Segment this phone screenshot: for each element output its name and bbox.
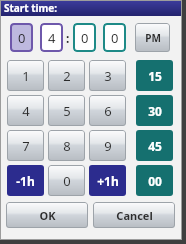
button[interactable]: 00 bbox=[136, 165, 173, 196]
staticText: 45 bbox=[148, 138, 162, 154]
staticText: 2 bbox=[63, 67, 71, 85]
staticText: 30 bbox=[148, 103, 162, 119]
staticText: 0 bbox=[18, 29, 26, 47]
staticText: Cancel bbox=[116, 208, 153, 223]
button[interactable]: 2 bbox=[48, 60, 85, 91]
staticText: OK bbox=[39, 208, 56, 223]
button[interactable]: 5 bbox=[48, 95, 85, 126]
button[interactable]: 8 bbox=[48, 130, 85, 161]
button[interactable]: 1 bbox=[7, 60, 44, 91]
staticText: -1h bbox=[16, 173, 35, 189]
button[interactable]: +1h bbox=[89, 165, 126, 196]
staticText: 0 bbox=[111, 29, 119, 47]
staticText: 3 bbox=[104, 67, 112, 85]
staticText: 6 bbox=[104, 102, 112, 120]
staticText: : bbox=[66, 30, 70, 46]
button[interactable]: 0 bbox=[103, 23, 126, 52]
staticText: 8 bbox=[63, 137, 71, 155]
button[interactable]: 6 bbox=[89, 95, 126, 126]
staticText: 0 bbox=[63, 172, 71, 190]
staticText: 7 bbox=[22, 137, 30, 155]
button[interactable]: 0 bbox=[48, 165, 85, 196]
staticText: 4 bbox=[48, 29, 56, 47]
button[interactable]: 0 bbox=[73, 23, 96, 52]
button[interactable]: 9 bbox=[89, 130, 126, 161]
button[interactable]: 3 bbox=[89, 60, 126, 91]
staticText: 9 bbox=[104, 137, 112, 155]
button[interactable]: 4 bbox=[40, 23, 63, 52]
button[interactable]: PM bbox=[135, 23, 170, 52]
button[interactable]: 30 bbox=[136, 95, 173, 126]
button[interactable]: 4 bbox=[7, 95, 44, 126]
staticText: 4 bbox=[22, 102, 30, 120]
staticText: 15 bbox=[148, 68, 162, 84]
button[interactable]: -1h bbox=[7, 165, 44, 196]
staticText: 0 bbox=[81, 29, 89, 47]
staticText: 5 bbox=[63, 102, 71, 120]
staticText: +1h bbox=[97, 173, 119, 189]
button[interactable]: 45 bbox=[136, 130, 173, 161]
button[interactable]: 0 bbox=[10, 23, 33, 52]
staticText: 00 bbox=[148, 173, 162, 189]
button[interactable]: OK bbox=[6, 202, 88, 228]
button[interactable]: 15 bbox=[136, 60, 173, 91]
staticText: PM bbox=[145, 31, 161, 45]
staticText: 1 bbox=[22, 67, 30, 85]
button[interactable]: Cancel bbox=[93, 202, 175, 228]
staticText: Start time: bbox=[4, 1, 58, 15]
button[interactable]: 7 bbox=[7, 130, 44, 161]
